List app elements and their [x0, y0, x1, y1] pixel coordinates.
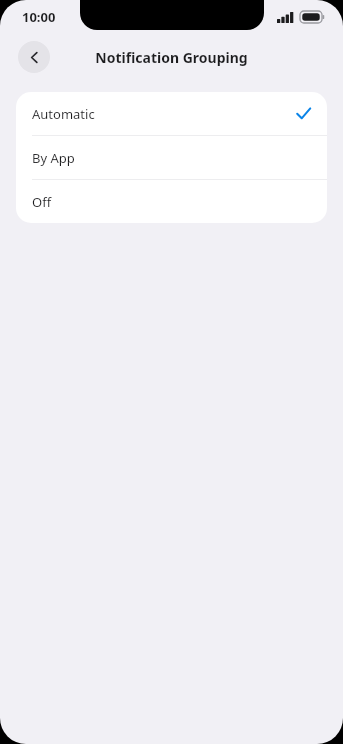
staticText: Notification Grouping: [0, 48, 343, 67]
staticText: 10:00: [22, 8, 56, 26]
button[interactable]: By App: [16, 136, 327, 179]
button[interactable]: Automatic: [16, 92, 327, 135]
staticText: Automatic: [32, 105, 296, 123]
button[interactable]: Back: [18, 41, 50, 73]
staticText: By App: [32, 149, 311, 167]
button[interactable]: Off: [16, 180, 327, 223]
staticText: Off: [32, 193, 311, 211]
